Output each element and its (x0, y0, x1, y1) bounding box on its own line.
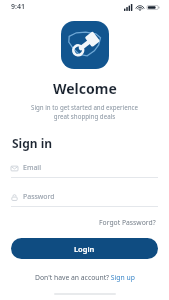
other: App logo (61, 21, 109, 69)
staticText: Sign in (12, 135, 53, 151)
staticText: 9:41 (11, 2, 25, 12)
button[interactable]: Login (11, 238, 158, 259)
staticText: Login (74, 244, 95, 254)
staticText: Password (23, 192, 55, 202)
staticText: Don't have an account? Sign up (35, 273, 135, 282)
button[interactable]: Password (11, 192, 158, 207)
button[interactable]: Email (11, 163, 158, 178)
staticText: Welcome (53, 79, 117, 98)
button[interactable]: Forgot Password? (96, 216, 159, 229)
staticText: Sign in to get started and experience gr… (31, 103, 138, 121)
staticText: Forgot Password? (99, 218, 156, 227)
button[interactable]: Don't have an account? Sign up (31, 271, 139, 284)
staticText: Email (23, 163, 41, 173)
